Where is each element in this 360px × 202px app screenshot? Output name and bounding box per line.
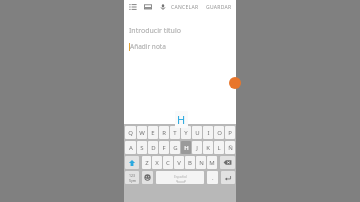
staticText: D xyxy=(151,144,156,152)
button[interactable]: T xyxy=(170,126,180,139)
button[interactable]: F xyxy=(159,141,169,154)
staticText: C xyxy=(166,159,170,167)
staticText: Q xyxy=(128,129,133,137)
button[interactable]: D xyxy=(148,141,158,154)
button[interactable]: I xyxy=(203,126,213,139)
staticText: Z xyxy=(145,159,149,167)
button[interactable]: L xyxy=(214,141,224,154)
button[interactable]: Q xyxy=(125,126,136,139)
staticText: O xyxy=(217,129,222,137)
staticText: T xyxy=(173,129,177,137)
staticText: H xyxy=(177,112,186,127)
staticText: GUARDAR xyxy=(206,4,232,11)
button[interactable]: Backspace xyxy=(220,156,235,169)
button[interactable]: Emoji xyxy=(142,171,153,184)
button[interactable]: GUARDAR xyxy=(205,2,233,13)
button[interactable]: Voice note xyxy=(156,0,170,14)
staticText: M xyxy=(209,159,215,167)
button[interactable]: Ñ xyxy=(225,141,235,154)
button[interactable]: V xyxy=(174,156,184,169)
staticText: CANCELAR xyxy=(171,4,199,11)
staticText: K xyxy=(206,144,210,152)
staticText: Introducir título xyxy=(129,26,181,36)
button[interactable]: G xyxy=(170,141,180,154)
button[interactable]: J xyxy=(192,141,202,154)
button[interactable]: O xyxy=(214,126,224,139)
button[interactable]: Checklist xyxy=(126,0,140,14)
staticText: L xyxy=(217,144,221,152)
button[interactable]: W xyxy=(137,126,147,139)
staticText: I xyxy=(207,129,210,137)
button[interactable]: . xyxy=(207,171,218,184)
button[interactable]: C xyxy=(163,156,173,169)
staticText: P xyxy=(228,129,232,137)
staticText: J xyxy=(196,144,198,152)
button[interactable]: N xyxy=(196,156,206,169)
staticText: X xyxy=(155,159,159,167)
button[interactable]: U xyxy=(192,126,202,139)
staticText: A xyxy=(129,144,133,152)
staticText: 123 xyxy=(129,173,136,178)
staticText: B xyxy=(188,159,192,167)
staticText: Ñ xyxy=(228,144,233,152)
button[interactable]: Add image xyxy=(141,0,155,14)
staticText: Sym xyxy=(129,178,136,183)
button[interactable]: Y xyxy=(181,126,191,139)
button[interactable]: B xyxy=(185,156,195,169)
staticText: U xyxy=(195,129,200,137)
staticText: R xyxy=(162,129,166,137)
button[interactable]: P xyxy=(225,126,235,139)
staticText: V xyxy=(177,159,181,167)
staticText: . xyxy=(212,174,214,182)
button[interactable]: Shift xyxy=(125,156,139,169)
button[interactable]: Enter xyxy=(221,171,235,184)
button[interactable]: K xyxy=(203,141,213,154)
button[interactable]: A xyxy=(125,141,136,154)
staticText: F xyxy=(162,144,166,152)
staticText: H xyxy=(184,144,189,152)
staticText: Español xyxy=(174,174,187,179)
staticText: G xyxy=(173,144,178,152)
button[interactable]: CANCELAR xyxy=(170,2,200,13)
button[interactable]: 123 xyxy=(125,171,139,184)
staticText: Y xyxy=(184,129,188,137)
button[interactable]: E xyxy=(148,126,158,139)
button[interactable]: M xyxy=(207,156,217,169)
button[interactable]: Add xyxy=(229,77,241,89)
staticText: W xyxy=(139,129,145,137)
staticText: Añadir nota xyxy=(130,42,166,51)
button[interactable]: Space xyxy=(156,171,204,184)
button[interactable]: Z xyxy=(142,156,151,169)
button[interactable]: R xyxy=(159,126,169,139)
staticText: N xyxy=(199,159,204,167)
button[interactable]: X xyxy=(152,156,162,169)
button[interactable]: S xyxy=(137,141,147,154)
button[interactable]: H xyxy=(181,141,191,154)
staticText: S xyxy=(140,144,144,152)
staticText: E xyxy=(151,129,155,137)
